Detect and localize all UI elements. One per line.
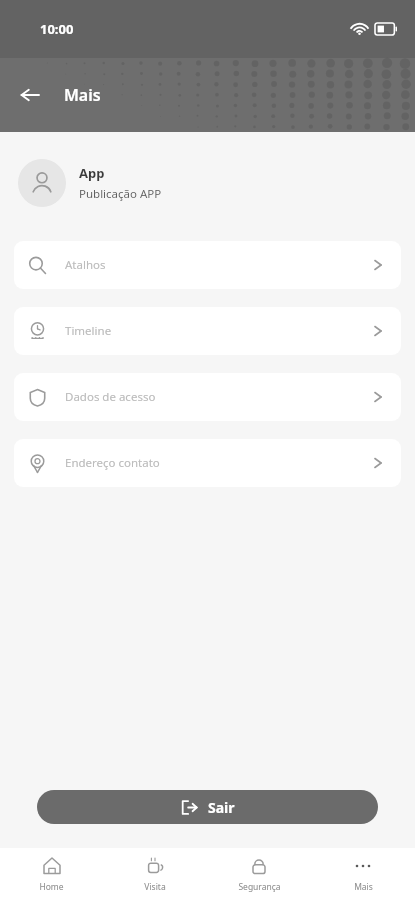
staticText: Atalhos <box>65 257 371 273</box>
button[interactable]: Home <box>0 848 103 900</box>
staticText: Publicação APP <box>79 186 162 202</box>
staticText: App <box>79 164 105 182</box>
button[interactable]: App <box>18 159 397 207</box>
staticText: 10:00 <box>40 20 74 38</box>
staticText: Mais <box>354 881 373 893</box>
button[interactable]: Segurança <box>207 848 311 900</box>
staticText: Endereço contato <box>65 455 371 471</box>
staticText: Dados de acesso <box>65 389 371 405</box>
button[interactable]: Endereço contato <box>14 439 401 487</box>
button[interactable]: Mais <box>311 848 415 900</box>
button[interactable]: Back <box>8 73 52 117</box>
staticText: Timeline <box>65 323 371 339</box>
button[interactable]: Atalhos <box>14 241 401 289</box>
button[interactable]: Visita <box>103 848 207 900</box>
staticText: Visita <box>144 881 166 893</box>
button[interactable]: Dados de acesso <box>14 373 401 421</box>
button[interactable]: Timeline <box>14 307 401 355</box>
staticText: Home <box>39 881 64 893</box>
staticText: Sair <box>208 798 235 817</box>
button[interactable]: Sair <box>37 790 378 824</box>
staticText: Mais <box>64 84 101 106</box>
staticText: Segurança <box>238 881 281 893</box>
